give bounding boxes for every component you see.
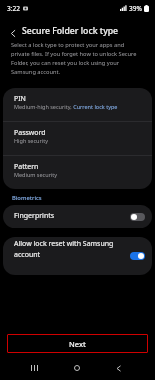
staticText: Select a lock type to protect your apps …	[11, 41, 140, 76]
staticText: Medium security	[14, 171, 58, 178]
button[interactable]: Pattern	[3, 156, 152, 189]
staticText: Next	[69, 339, 86, 349]
staticText: Fingerprints	[14, 211, 126, 221]
staticText: Allow lock reset with Samsung account	[14, 239, 126, 259]
staticText: Password	[14, 128, 46, 138]
staticText: Medium-high security, Current lock type	[14, 103, 118, 110]
button[interactable]: Next	[7, 334, 148, 353]
staticText: Secure Folder lock type	[22, 25, 119, 37]
staticText: High security	[14, 137, 48, 144]
staticText: 39%	[129, 4, 142, 13]
button[interactable]: Recent apps	[24, 356, 44, 380]
button[interactable]: Back	[3, 20, 23, 46]
button[interactable]: Allow lock reset with Samsung account	[3, 237, 152, 275]
staticText: 3:22	[7, 4, 20, 13]
button[interactable]: Fingerprints	[3, 205, 152, 228]
staticText: Pattern	[14, 162, 39, 172]
button[interactable]: PIN	[3, 88, 152, 121]
button[interactable]: Back	[108, 356, 128, 380]
staticText: Biometrics	[12, 194, 42, 202]
button[interactable]: Password	[3, 122, 152, 155]
staticText: PIN	[14, 94, 26, 104]
button[interactable]: Home	[67, 356, 87, 380]
